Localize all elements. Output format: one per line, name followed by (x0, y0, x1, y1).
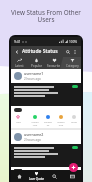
staticText: Love Quote (29, 177, 45, 181)
button[interactable]: WhatsApp (31, 115, 39, 126)
button[interactable]: Category (63, 170, 81, 182)
button[interactable]: Latest (11, 57, 28, 69)
staticText: Latest (15, 64, 24, 68)
button[interactable]: Category (63, 57, 81, 69)
button[interactable]: Search (65, 49, 71, 55)
button[interactable]: Popular (28, 57, 45, 69)
staticText: More (71, 120, 77, 123)
button[interactable]: Search (45, 170, 63, 182)
staticText: Facebook (44, 120, 52, 126)
button[interactable]: Like (14, 115, 22, 123)
staticText: username2 (24, 132, 44, 137)
staticText: username1 (24, 71, 44, 76)
staticText: 2 hours ago (24, 138, 41, 142)
button[interactable]: Back (14, 49, 20, 55)
button[interactable]: username2 (14, 132, 78, 142)
button[interactable]: Facebook (44, 115, 52, 126)
staticText: Popular (31, 64, 43, 68)
staticText: Attitude Status (22, 48, 58, 55)
button[interactable]: username1 (14, 71, 78, 81)
button[interactable]: Views (14, 108, 22, 112)
button[interactable]: Love Quote (28, 170, 45, 182)
button[interactable]: Views (14, 169, 22, 170)
button[interactable]: Favourite (45, 57, 63, 69)
button[interactable]: Create status (69, 163, 78, 172)
staticText: 2 hours ago (24, 77, 41, 81)
button[interactable]: Share on WhatsApp (72, 85, 78, 88)
button[interactable]: More (70, 115, 78, 123)
staticText: WhatsApp (31, 120, 39, 126)
staticText: Category (66, 64, 79, 68)
staticText: Like (16, 120, 21, 123)
button[interactable]: Home (11, 170, 28, 182)
button[interactable]: Download (57, 115, 65, 126)
staticText: View Status From Other Users (0, 8, 92, 23)
button[interactable]: More options (72, 49, 78, 55)
staticText: Download (57, 120, 65, 126)
staticText: 9:41 (14, 39, 21, 44)
staticText: 100% (69, 40, 78, 44)
button[interactable]: Share on WhatsApp (72, 146, 78, 149)
staticText: Favourite (47, 64, 61, 68)
